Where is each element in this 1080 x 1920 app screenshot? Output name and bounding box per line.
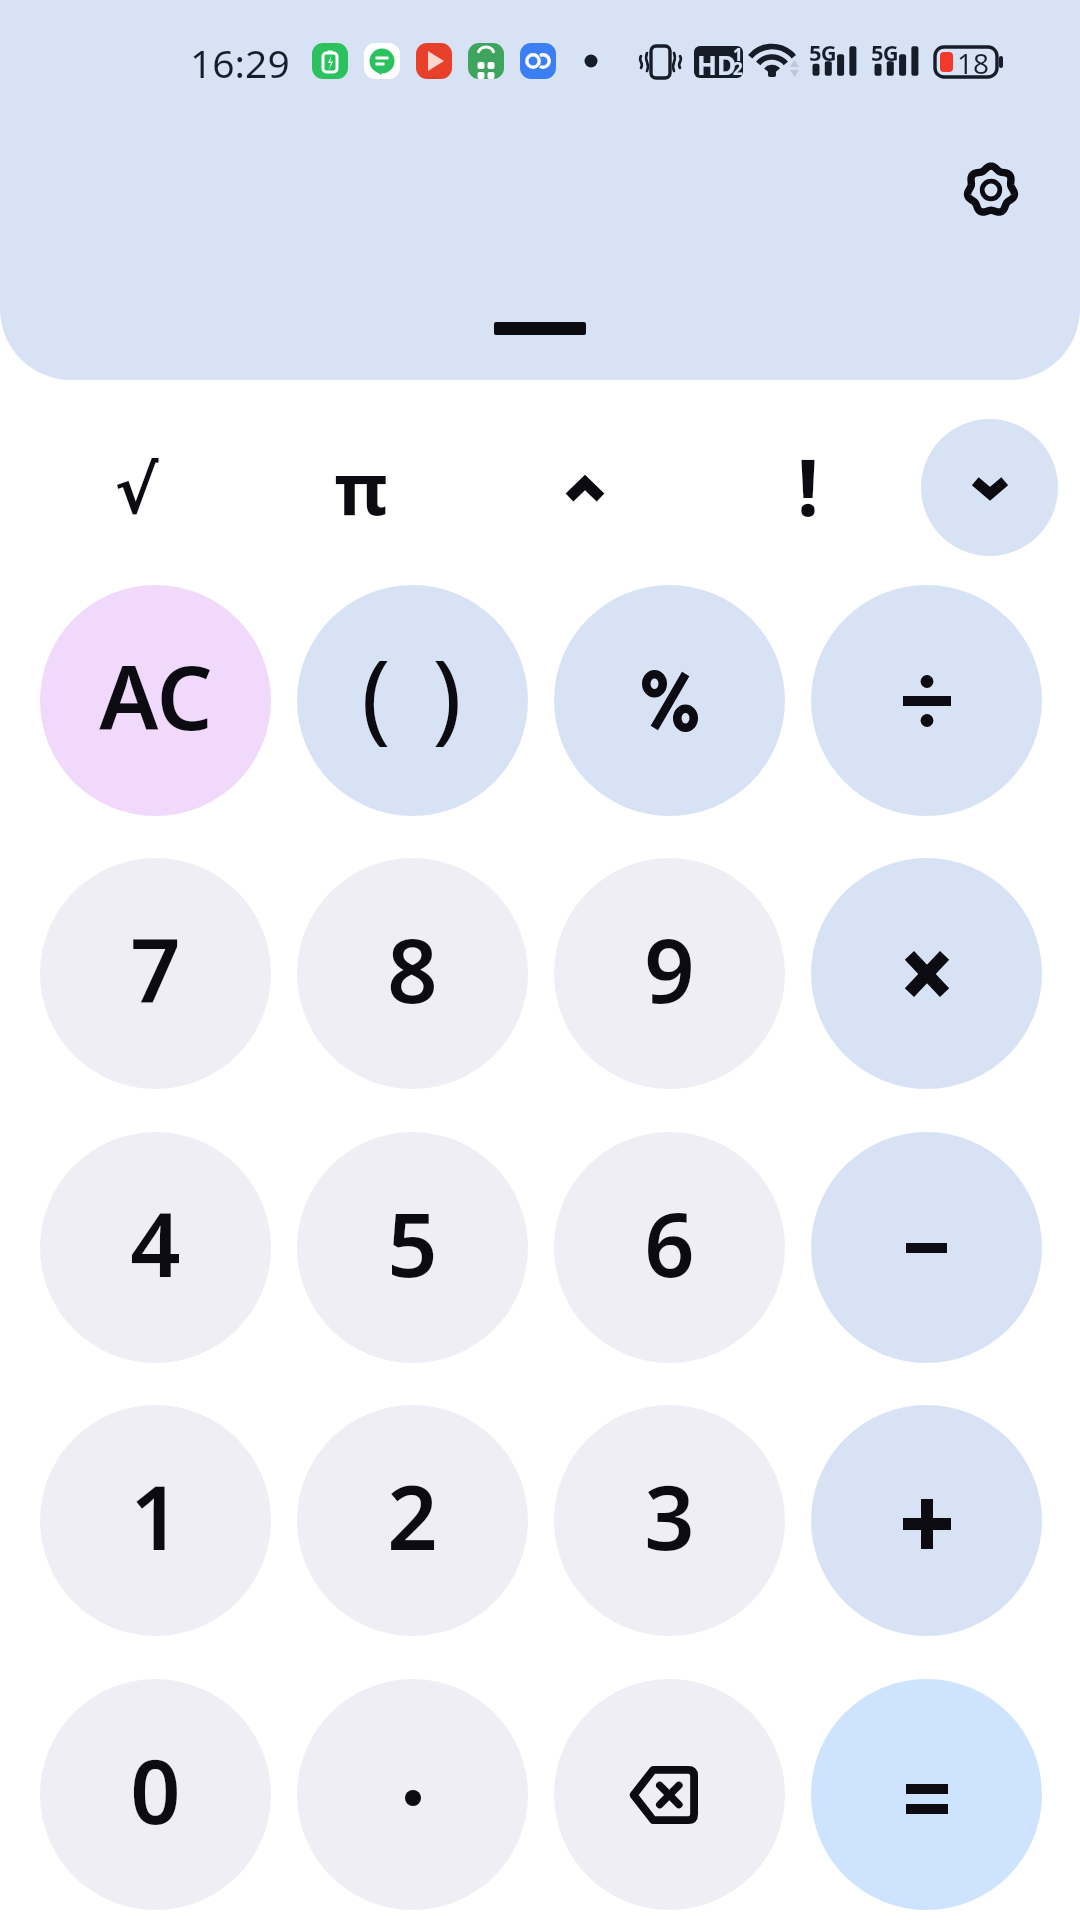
button[interactable]: 1 [40, 1405, 271, 1636]
button[interactable] [811, 858, 1042, 1089]
staticText: AC [99, 636, 213, 756]
button[interactable] [811, 1132, 1042, 1363]
staticText: HD [697, 47, 736, 82]
button[interactable]: π [249, 419, 473, 555]
staticText: 6 [644, 1183, 695, 1303]
button[interactable]: Settings [933, 132, 1049, 248]
staticText: 1 [733, 43, 743, 66]
button[interactable]: 5 [297, 1132, 528, 1363]
button[interactable] [811, 1405, 1042, 1636]
staticText: π [334, 438, 388, 536]
button[interactable] [811, 585, 1042, 816]
button[interactable] [554, 585, 785, 816]
button[interactable] [811, 1679, 1042, 1910]
staticText: 0 [130, 1730, 181, 1850]
button[interactable]: 9 [554, 858, 785, 1089]
button[interactable]: 7 [40, 858, 271, 1089]
staticText: 7 [130, 909, 181, 1029]
button[interactable]: 0 [40, 1679, 271, 1910]
button[interactable]: Show more functions [921, 419, 1058, 556]
button[interactable]: AC [40, 585, 271, 816]
staticText: 9 [644, 909, 695, 1029]
staticText: 16:29 [190, 36, 290, 89]
staticText: 18 [957, 44, 990, 82]
button[interactable] [297, 1679, 528, 1910]
button[interactable]: 2 [297, 1405, 528, 1636]
button[interactable]: 6 [554, 1132, 785, 1363]
button[interactable]: 4 [40, 1132, 271, 1363]
staticText: 2 [733, 57, 743, 80]
staticText: 1 [130, 1456, 181, 1576]
staticText: 3 [644, 1456, 695, 1576]
staticText: ! [797, 433, 819, 539]
button[interactable]: √ [24, 419, 248, 555]
staticText: 5G [871, 37, 898, 67]
staticText: 4 [130, 1183, 181, 1303]
button[interactable] [473, 419, 697, 555]
staticText: 8 [387, 909, 438, 1029]
staticText: 2 [387, 1456, 438, 1576]
button[interactable]: ! [696, 419, 920, 555]
staticText: 5 [387, 1183, 438, 1303]
staticText: ( ) [361, 626, 470, 759]
staticText: 5G [809, 37, 836, 67]
button[interactable]: ( ) [297, 585, 528, 816]
button[interactable]: 3 [554, 1405, 785, 1636]
staticText: √ [114, 452, 159, 529]
button[interactable]: 8 [297, 858, 528, 1089]
button[interactable]: Backspace [554, 1679, 785, 1910]
